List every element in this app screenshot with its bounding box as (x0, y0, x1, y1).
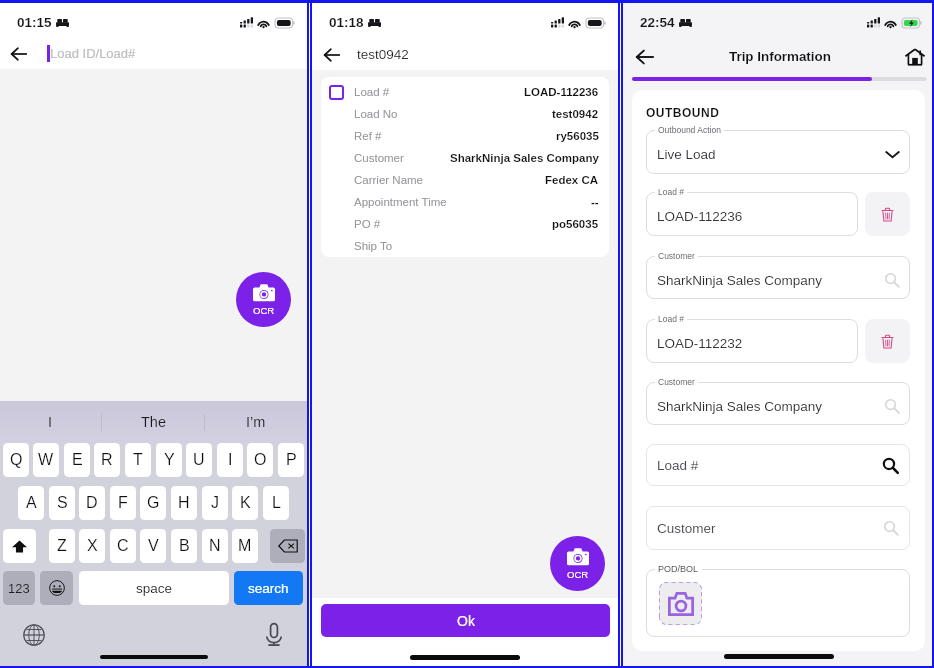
staticText: SharkNinja Sales Company (450, 152, 599, 165)
button[interactable]: A (18, 486, 44, 520)
staticText: P (286, 451, 297, 469)
button[interactable]: Q (3, 443, 29, 477)
staticText: H (178, 494, 190, 512)
button[interactable]: Z (49, 529, 75, 563)
staticText: test0942 (552, 108, 599, 121)
staticText: Load # (657, 458, 699, 473)
staticText: SharkNinja Sales Company (657, 399, 823, 414)
staticText: A (26, 494, 37, 512)
staticText: R (101, 451, 113, 469)
button[interactable]: P (278, 443, 304, 477)
staticText: Ship To (354, 240, 393, 253)
button[interactable]: G (140, 486, 166, 520)
button[interactable]: OCR camera (236, 272, 291, 327)
staticText: LOAD-112236 (657, 209, 743, 224)
button[interactable]: X (79, 529, 105, 563)
button[interactable]: Back (320, 43, 343, 66)
button[interactable] (646, 382, 910, 425)
staticText: K (240, 494, 251, 512)
button[interactable]: V (140, 529, 166, 563)
button[interactable]: Backspace (270, 529, 305, 563)
button[interactable] (646, 319, 858, 363)
button[interactable] (646, 256, 910, 299)
button[interactable] (646, 130, 910, 174)
button[interactable]: E (64, 443, 90, 477)
button[interactable]: R (94, 443, 120, 477)
button[interactable]: Home (901, 43, 928, 70)
staticText: search (248, 581, 289, 596)
button[interactable]: C (110, 529, 136, 563)
staticText: Load # (658, 187, 684, 196)
staticText: M (238, 537, 252, 555)
button[interactable]: U (186, 443, 212, 477)
button[interactable]: M (232, 529, 258, 563)
staticText: Customer (658, 251, 695, 260)
button[interactable]: N (202, 529, 228, 563)
button[interactable]: The (102, 401, 204, 443)
button[interactable]: Add photo (659, 582, 702, 625)
staticText: Ref # (354, 130, 382, 143)
button[interactable]: Delete load (865, 192, 910, 236)
button[interactable]: OCR camera (550, 536, 605, 591)
button[interactable]: Y (156, 443, 182, 477)
staticText: Load ID/Load# (50, 46, 136, 61)
staticText: -- (591, 196, 599, 209)
button[interactable]: I (0, 401, 101, 443)
staticText: po56035 (552, 218, 599, 231)
button[interactable]: Delete load (865, 319, 910, 363)
button[interactable]: J (202, 486, 228, 520)
button[interactable]: I (217, 443, 243, 477)
button[interactable]: L (263, 486, 289, 520)
staticText: U (193, 451, 205, 469)
staticText: I’m (246, 414, 266, 430)
button[interactable]: 123 (3, 571, 35, 605)
button[interactable]: Load # (646, 444, 910, 486)
staticText: X (87, 537, 98, 555)
button[interactable]: W (33, 443, 59, 477)
staticText: S (57, 494, 68, 512)
button[interactable]: space (79, 571, 229, 605)
button[interactable]: search (234, 571, 303, 605)
staticText: Y (164, 451, 175, 469)
staticText: PO # (354, 218, 381, 231)
button[interactable]: F (110, 486, 136, 520)
staticText: L (272, 494, 281, 512)
button[interactable]: Select load (329, 85, 344, 100)
button[interactable]: Change keyboard (23, 624, 45, 646)
button[interactable]: O (247, 443, 273, 477)
staticText: Fedex CA (545, 174, 599, 187)
staticText: Live Load (657, 147, 716, 162)
staticText: G (147, 494, 160, 512)
staticText: Trip Information (729, 49, 831, 64)
staticText: Customer (354, 152, 404, 165)
button[interactable]: Shift (3, 529, 36, 563)
button[interactable]: Back (631, 43, 658, 70)
staticText: F (118, 494, 128, 512)
button[interactable]: T (125, 443, 151, 477)
staticText: V (148, 537, 159, 555)
button[interactable]: Customer (646, 506, 910, 550)
button[interactable]: Back (7, 42, 31, 66)
staticText: OCR (253, 305, 275, 316)
staticText: test0942 (357, 47, 409, 62)
button[interactable]: K (232, 486, 258, 520)
button[interactable]: Dictate (264, 623, 284, 646)
staticText: SharkNinja Sales Company (657, 273, 823, 288)
staticText: W (38, 451, 54, 469)
button[interactable] (646, 192, 858, 236)
staticText: 01:18 (329, 15, 364, 30)
button[interactable]: S (49, 486, 75, 520)
staticText: Carrier Name (354, 174, 424, 187)
button[interactable]: Emoji (40, 571, 73, 605)
button[interactable]: Ok (321, 604, 610, 637)
staticText: LOAD-112236 (524, 86, 599, 99)
button[interactable]: I’m (205, 401, 307, 443)
staticText: POD/BOL (658, 564, 699, 574)
button[interactable]: B (171, 529, 197, 563)
staticText: Load No (354, 108, 398, 121)
staticText: B (179, 537, 190, 555)
staticText: OCR (567, 569, 589, 580)
staticText: I (228, 451, 233, 469)
button[interactable]: D (79, 486, 105, 520)
button[interactable]: H (171, 486, 197, 520)
